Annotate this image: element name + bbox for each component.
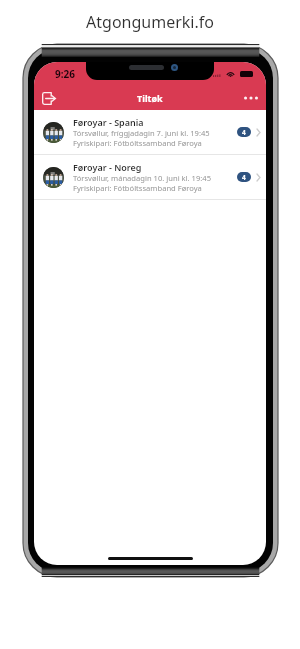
staticText: Tórsvøllur, fríggjadagin 7. juni kl. 19:… (73, 128, 210, 138)
button[interactable]: Føroyar - Spania (34, 110, 266, 154)
staticText: Føroyar - Noreg (73, 161, 142, 173)
staticText: Føroyar - Spania (73, 116, 144, 128)
staticText: 4 (242, 173, 246, 182)
staticText: Fyriskipari: Fótbóltssamband Føroya (73, 183, 202, 193)
staticText: Tórsvøllur, mánadagin 10. juni kl. 19:45 (73, 173, 211, 183)
button[interactable]: More options (239, 86, 263, 110)
button[interactable]: Føroyar - Noreg (34, 155, 266, 199)
button[interactable]: Log out (37, 86, 61, 110)
staticText: 9:26 (55, 67, 75, 81)
staticText: Atgongumerki.fo (0, 11, 300, 33)
staticText: Fyriskipari: Fótbóltssamband Føroya (73, 138, 202, 148)
staticText: Tiltøk (137, 92, 163, 104)
staticText: 4 (242, 128, 246, 137)
